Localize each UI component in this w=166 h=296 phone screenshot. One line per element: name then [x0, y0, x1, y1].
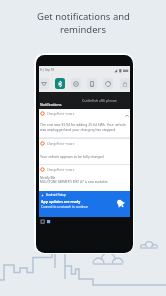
staticText: Cuttlefish x86 phone [82, 98, 117, 103]
button[interactable]: ChargePoint • now ▾ [39, 109, 130, 137]
staticText: ChargePoint • now ▾ [47, 142, 75, 146]
staticText: reminders [60, 23, 106, 36]
staticText: Notify Me [40, 175, 56, 180]
button[interactable] [87, 78, 97, 89]
staticText: Fri, Sep 18 [40, 68, 55, 72]
button[interactable] [103, 78, 113, 89]
button[interactable]: Android Setup [39, 191, 130, 217]
button[interactable] [55, 78, 65, 89]
button[interactable] [71, 78, 81, 89]
staticText: Get notifications and [37, 10, 130, 23]
staticText: Your vehicle appears to be fully charged… [40, 154, 105, 159]
staticText: The cost was $3.94 for adding 25.64 kWh.… [40, 122, 126, 127]
staticText: Connect to a network to continue [41, 205, 89, 209]
staticText: Android Setup [46, 193, 67, 197]
staticText: Notifications [40, 102, 62, 107]
button[interactable] [39, 78, 49, 89]
staticText: ChargePoint • now ▾ [47, 168, 75, 172]
button[interactable]: ChargePoint • now ▾ [39, 139, 130, 164]
staticText: was unplugged and your charging has stop… [40, 127, 116, 132]
button[interactable]: ChargePoint • now ▾ [39, 165, 130, 192]
staticText: ChargePoint • now ▾ [47, 112, 75, 116]
button[interactable] [120, 78, 130, 89]
staticText: App updates are ready [41, 199, 81, 204]
staticText: MILLSTONE FARMER'S MKT #7 is now availab… [40, 180, 109, 184]
